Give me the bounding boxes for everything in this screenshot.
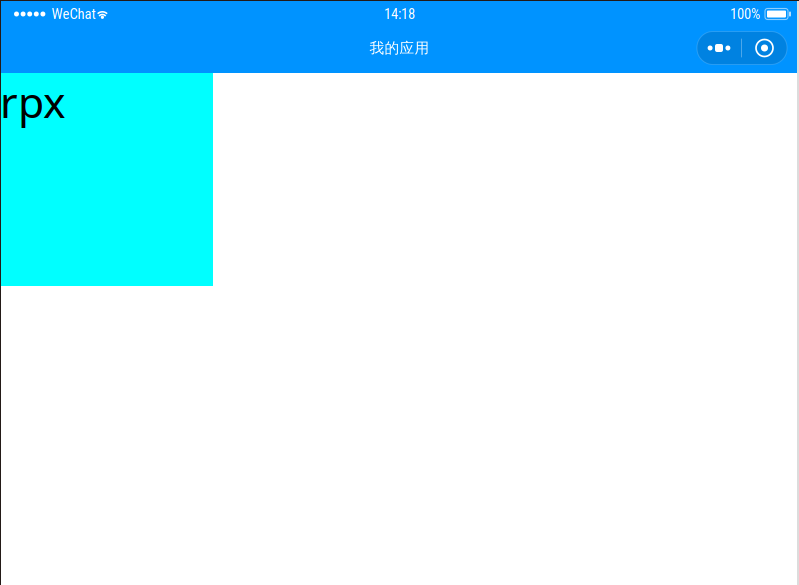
staticText: 我的应用 bbox=[369, 39, 429, 57]
button[interactable]: More bbox=[697, 31, 741, 64]
staticText: WeChat bbox=[51, 5, 95, 23]
staticText: 14:18 bbox=[384, 5, 415, 23]
button[interactable]: Close mini program bbox=[742, 31, 787, 64]
staticText: rpx bbox=[0, 73, 66, 130]
staticText: 100% bbox=[730, 5, 760, 23]
